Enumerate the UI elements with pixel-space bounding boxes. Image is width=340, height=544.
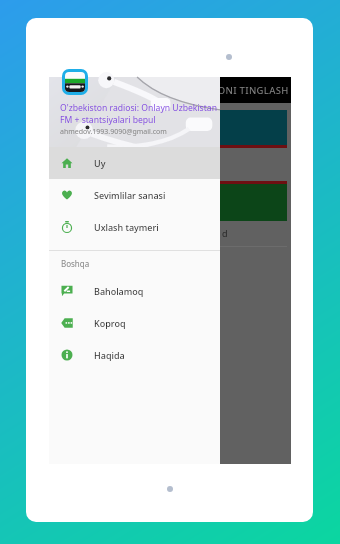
button[interactable]: Haqida [49,339,220,371]
staticText: Haqida [94,349,125,361]
staticText: ahmedov.1993.9090@gmail.com [60,127,167,137]
staticText: Uxlash taymeri [94,221,159,233]
button[interactable]: Uxlash taymeri [49,211,220,243]
button[interactable]: Baholamoq [49,275,220,307]
staticText: d [222,227,228,239]
button[interactable]: Uy [49,147,220,179]
staticText: Uy [94,157,106,169]
button[interactable]: Sevimlilar sanasi [49,179,220,211]
staticText: Sevimlilar sanasi [94,189,166,201]
staticText: O'zbekiston radiosi: Onlayn Uzbekistan F… [60,102,220,125]
button[interactable]: Koproq [49,307,220,339]
staticText: Boshqa [61,258,90,269]
staticText: RADIONI TINGLASH [194,84,289,97]
staticText: Koproq [94,317,126,329]
staticText: Baholamoq [94,285,144,297]
